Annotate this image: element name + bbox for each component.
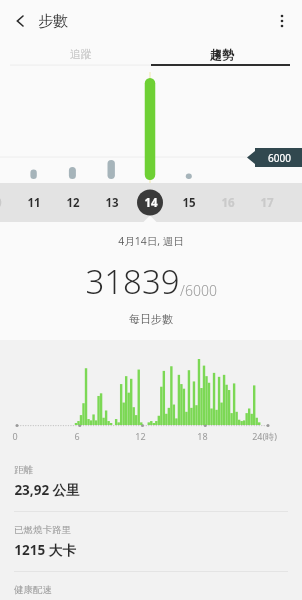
button[interactable]: 趨勢 (151, 42, 292, 66)
staticText: 12 (66, 195, 80, 211)
staticText: 31839 (85, 259, 180, 304)
button[interactable]: More options (267, 6, 297, 36)
button[interactable]: 12 (53, 183, 92, 222)
staticText: 23,92 公里 (14, 481, 80, 499)
staticText: 6 (74, 430, 80, 442)
staticText: 健康配速 (14, 584, 52, 596)
button[interactable]: 11 (14, 183, 53, 222)
staticText: 17 (260, 195, 274, 211)
button[interactable]: 17 (247, 183, 286, 222)
staticText: 24(時) (252, 430, 277, 442)
staticText: 4月14日, 週日 (118, 234, 184, 248)
staticText: 步數 (38, 12, 68, 31)
button[interactable]: 健康配速 (0, 572, 302, 600)
staticText: 0 (12, 430, 18, 442)
staticText: 15 (182, 195, 196, 211)
button[interactable]: 15 (169, 183, 208, 222)
button[interactable]: 14 (131, 183, 170, 222)
staticText: 已燃燒卡路里 (14, 524, 71, 536)
staticText: 12 (135, 430, 146, 442)
staticText: 1215 大卡 (14, 541, 76, 559)
staticText: /6000 (180, 281, 217, 300)
staticText: 14 (144, 195, 158, 211)
button[interactable]: 已燃燒卡路里 (0, 512, 302, 571)
button[interactable]: 13 (92, 183, 131, 222)
staticText: 每日步數 (129, 312, 173, 326)
button[interactable]: 追蹤 (10, 42, 151, 66)
staticText: 18 (197, 430, 208, 442)
button[interactable]: Back (4, 5, 36, 37)
button[interactable]: 距離 (0, 452, 302, 511)
staticText: 距離 (14, 464, 33, 476)
staticText: 10 (0, 195, 2, 211)
staticText: 13 (105, 195, 119, 211)
staticText: 追蹤 (70, 47, 92, 61)
staticText: 6000 (268, 151, 291, 165)
button[interactable]: 16 (208, 183, 247, 222)
staticText: 11 (27, 195, 41, 211)
staticText: 16 (221, 195, 235, 211)
staticText: 趨勢 (210, 47, 234, 62)
